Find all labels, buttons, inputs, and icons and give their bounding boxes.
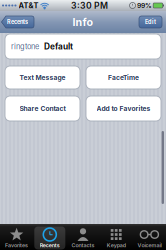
staticText: Text Message xyxy=(19,73,65,82)
staticText: FaceTime xyxy=(108,73,139,82)
staticText: Edit xyxy=(145,19,156,25)
button[interactable]: Edit xyxy=(139,16,162,28)
button[interactable]: Keypad xyxy=(100,226,133,250)
button[interactable]: Voicemail xyxy=(133,226,166,250)
staticText: Keypad xyxy=(107,242,126,248)
staticText: Info xyxy=(72,15,93,28)
button[interactable]: Text Message xyxy=(5,66,80,89)
button[interactable]: Favorites xyxy=(0,226,33,250)
staticText: ringtone xyxy=(11,42,39,51)
staticText: 3:30 PM xyxy=(71,0,108,11)
button[interactable]: Recents xyxy=(1,16,34,28)
staticText: AT&T xyxy=(18,1,38,10)
button[interactable]: FaceTime xyxy=(86,66,161,89)
button[interactable]: Contacts xyxy=(66,226,100,250)
staticText: Recents xyxy=(40,242,60,248)
staticText: Recents xyxy=(7,19,28,25)
staticText: Default xyxy=(44,41,73,51)
staticText: Add to Favorites xyxy=(96,104,150,113)
button[interactable]: Add to Favorites xyxy=(86,96,161,121)
button[interactable]: Recents xyxy=(33,226,66,250)
staticText: 99% xyxy=(137,1,152,10)
staticText: Contacts xyxy=(71,242,94,248)
staticText: Favorites xyxy=(5,242,28,248)
staticText: Voicemail xyxy=(137,242,161,248)
button[interactable]: Share Contact xyxy=(5,96,80,121)
staticText: Share Contact xyxy=(19,104,65,113)
